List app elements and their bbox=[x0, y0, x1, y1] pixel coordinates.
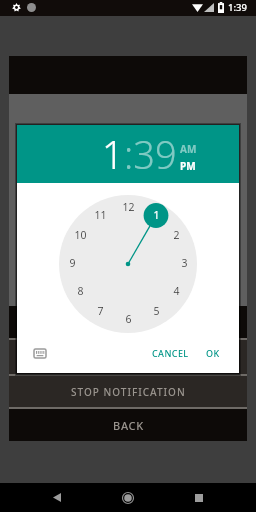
button[interactable]: Back bbox=[35, 483, 78, 512]
staticText: BACK bbox=[113, 418, 144, 433]
button[interactable]: BACK bbox=[9, 409, 247, 441]
button[interactable]: Recent apps bbox=[177, 483, 220, 512]
staticText: 11 bbox=[94, 208, 107, 222]
button[interactable]: CANCEL bbox=[146, 342, 195, 364]
button[interactable]: Switch to text input mode bbox=[29, 342, 51, 364]
button[interactable]: 1 bbox=[102, 128, 124, 180]
staticText: CANCEL bbox=[152, 347, 189, 359]
staticText: 4 bbox=[173, 284, 180, 298]
button[interactable]: OK bbox=[200, 342, 226, 364]
staticText: OK bbox=[206, 347, 220, 359]
staticText: 1:39 bbox=[228, 1, 247, 14]
staticText: 12 bbox=[122, 200, 135, 214]
staticText: 3 bbox=[181, 256, 188, 270]
staticText: 2 bbox=[173, 228, 180, 242]
staticText: 7 bbox=[97, 304, 104, 318]
staticText: 10 bbox=[74, 228, 87, 242]
staticText: AM bbox=[180, 142, 197, 156]
button[interactable]: AM bbox=[180, 142, 197, 156]
staticText: STOP NOTIFICATION bbox=[71, 385, 186, 399]
staticText: PM bbox=[180, 159, 196, 173]
button[interactable]: :39 bbox=[124, 128, 177, 180]
button[interactable]: STOP NOTIFICATION bbox=[9, 376, 247, 407]
staticText: 9 bbox=[69, 256, 76, 270]
staticText: 8 bbox=[77, 284, 84, 298]
staticText: 6 bbox=[125, 312, 132, 326]
staticText: 5 bbox=[153, 304, 160, 318]
button[interactable]: Home bbox=[106, 483, 149, 512]
staticText: 1 bbox=[153, 208, 160, 222]
button[interactable]: PM bbox=[180, 159, 196, 173]
